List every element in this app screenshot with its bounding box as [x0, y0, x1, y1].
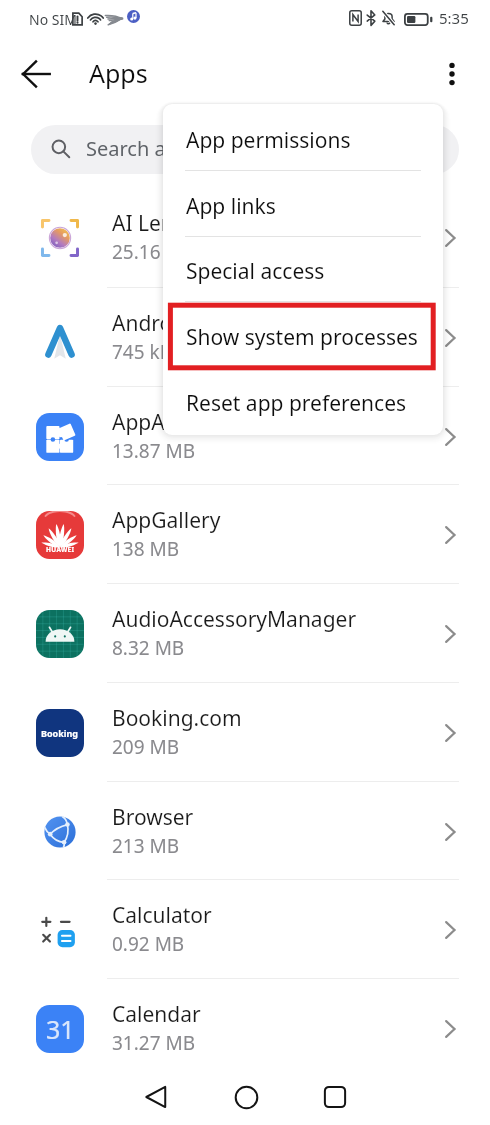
staticText: 745 kB [112, 339, 173, 365]
staticText: AI Lens [112, 209, 184, 238]
button[interactable]: Browser [0, 782, 490, 881]
staticText: 13.87 MB [112, 438, 196, 464]
button[interactable]: AudioAccessoryManager [0, 584, 490, 683]
button[interactable]: Back [12, 50, 60, 98]
button[interactable]: App permissions [163, 107, 443, 173]
staticText: App links [186, 192, 276, 221]
staticText: Special access [186, 257, 325, 286]
staticText: Reset app preferences [186, 389, 407, 418]
staticText: HUAWEI [46, 545, 75, 554]
staticText: Apps [89, 56, 148, 90]
staticText: Browser [112, 803, 194, 832]
staticText: 0.92 MB [112, 931, 185, 957]
button[interactable]: Reset app preferences [163, 370, 443, 435]
staticText: Calculator [112, 901, 212, 930]
staticText: AudioAccessoryManager [112, 605, 357, 634]
button[interactable]: AppAssistant [0, 387, 490, 486]
staticText: App permissions [186, 126, 351, 155]
button[interactable]: AI Lens [0, 188, 490, 287]
button[interactable]: App links [163, 173, 443, 239]
button[interactable]: Show system processes [163, 304, 443, 370]
button[interactable]: More options [430, 52, 474, 96]
staticText: Calendar [112, 1000, 201, 1029]
button[interactable]: Android Auto [0, 288, 490, 387]
button[interactable]: Search apps [31, 125, 459, 174]
staticText: 138 MB [112, 536, 180, 562]
button[interactable]: Back [132, 1073, 180, 1121]
button[interactable]: Home [222, 1073, 270, 1121]
button[interactable]: 31 [0, 979, 490, 1078]
button[interactable]: Booking [0, 683, 490, 782]
staticText: 8.32 MB [112, 635, 185, 661]
button[interactable]: Calculator [0, 880, 490, 979]
staticText: Show system processes [186, 323, 418, 352]
button[interactable]: Special access [163, 238, 443, 304]
staticText: Search apps [86, 135, 200, 162]
staticText: No SIM [29, 10, 77, 29]
staticText: AppGallery [112, 506, 221, 535]
staticText: 25.16 MB [112, 239, 196, 265]
staticText: 5:35 [439, 8, 469, 28]
staticText: Android Auto [112, 309, 243, 338]
staticText: 31 [46, 1012, 75, 1046]
staticText: Booking.com [112, 704, 242, 733]
staticText: 209 MB [112, 734, 180, 760]
staticText: AppAssistant [112, 408, 241, 437]
staticText: 31.27 MB [112, 1030, 196, 1056]
button[interactable]: HUAWEI [0, 485, 490, 584]
button[interactable]: Recent apps [311, 1073, 359, 1121]
staticText: Booking [41, 727, 79, 739]
staticText: 213 MB [112, 833, 180, 859]
